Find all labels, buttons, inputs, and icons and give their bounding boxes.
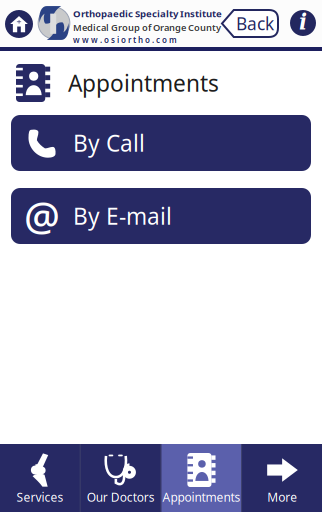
staticText: i	[299, 9, 307, 35]
button[interactable]: Information	[290, 10, 316, 36]
staticText: Appointments	[162, 489, 240, 505]
staticText: Our Doctors	[87, 489, 155, 505]
button[interactable]: Our Doctors	[81, 444, 161, 512]
staticText: Back	[236, 12, 274, 35]
staticText: w w w . o s i o r t h o . c o m	[73, 34, 177, 45]
button[interactable]: @	[11, 188, 311, 244]
button[interactable]: Home	[4, 9, 34, 39]
button[interactable]: By Call	[11, 115, 311, 171]
button[interactable]: Back	[222, 10, 278, 37]
staticText: @	[24, 189, 60, 242]
staticText: Appointments	[68, 68, 219, 98]
staticText: By Call	[73, 128, 145, 158]
button[interactable]: Appointments	[161, 444, 241, 512]
staticText: Services	[16, 489, 63, 505]
staticText: Medical Group of Orange County	[73, 21, 221, 33]
staticText: By E-mail	[73, 201, 172, 231]
button[interactable]: More	[242, 444, 322, 512]
staticText: More	[267, 489, 297, 505]
button[interactable]: Services	[0, 444, 80, 512]
staticText: Orthopaedic Specialty Institute	[73, 7, 222, 20]
